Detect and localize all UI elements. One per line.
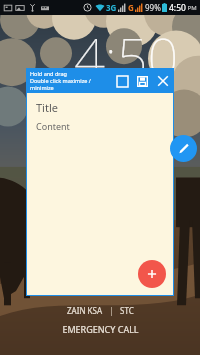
button[interactable]: Content <box>36 120 70 132</box>
staticText: 4:50 <box>74 20 179 94</box>
button[interactable]: Save <box>132 71 152 91</box>
staticText: 4:50 <box>169 2 186 14</box>
staticText: Hold and drag <box>30 70 67 77</box>
button[interactable]: Maximize <box>112 71 132 91</box>
staticText: PM <box>186 4 197 12</box>
button[interactable]: Close <box>152 70 174 92</box>
staticText: Double click maximize / <box>30 77 91 84</box>
staticText: minimize <box>30 84 54 91</box>
button[interactable]: EMERGENCY CALL <box>56 321 145 337</box>
staticText: ZAIN KSA <box>67 305 103 316</box>
staticText: 3G <box>106 2 117 13</box>
staticText: | <box>103 305 120 316</box>
staticText: G <box>128 2 134 13</box>
staticText: STC <box>120 305 134 316</box>
button[interactable]: Hold and drag <box>26 68 174 93</box>
staticText: EMERGENCY CALL <box>62 323 139 335</box>
button[interactable]: Add note <box>138 260 166 288</box>
staticText: 99% <box>145 2 161 13</box>
button[interactable]: Edit <box>170 135 197 162</box>
button[interactable]: Title <box>36 100 58 115</box>
